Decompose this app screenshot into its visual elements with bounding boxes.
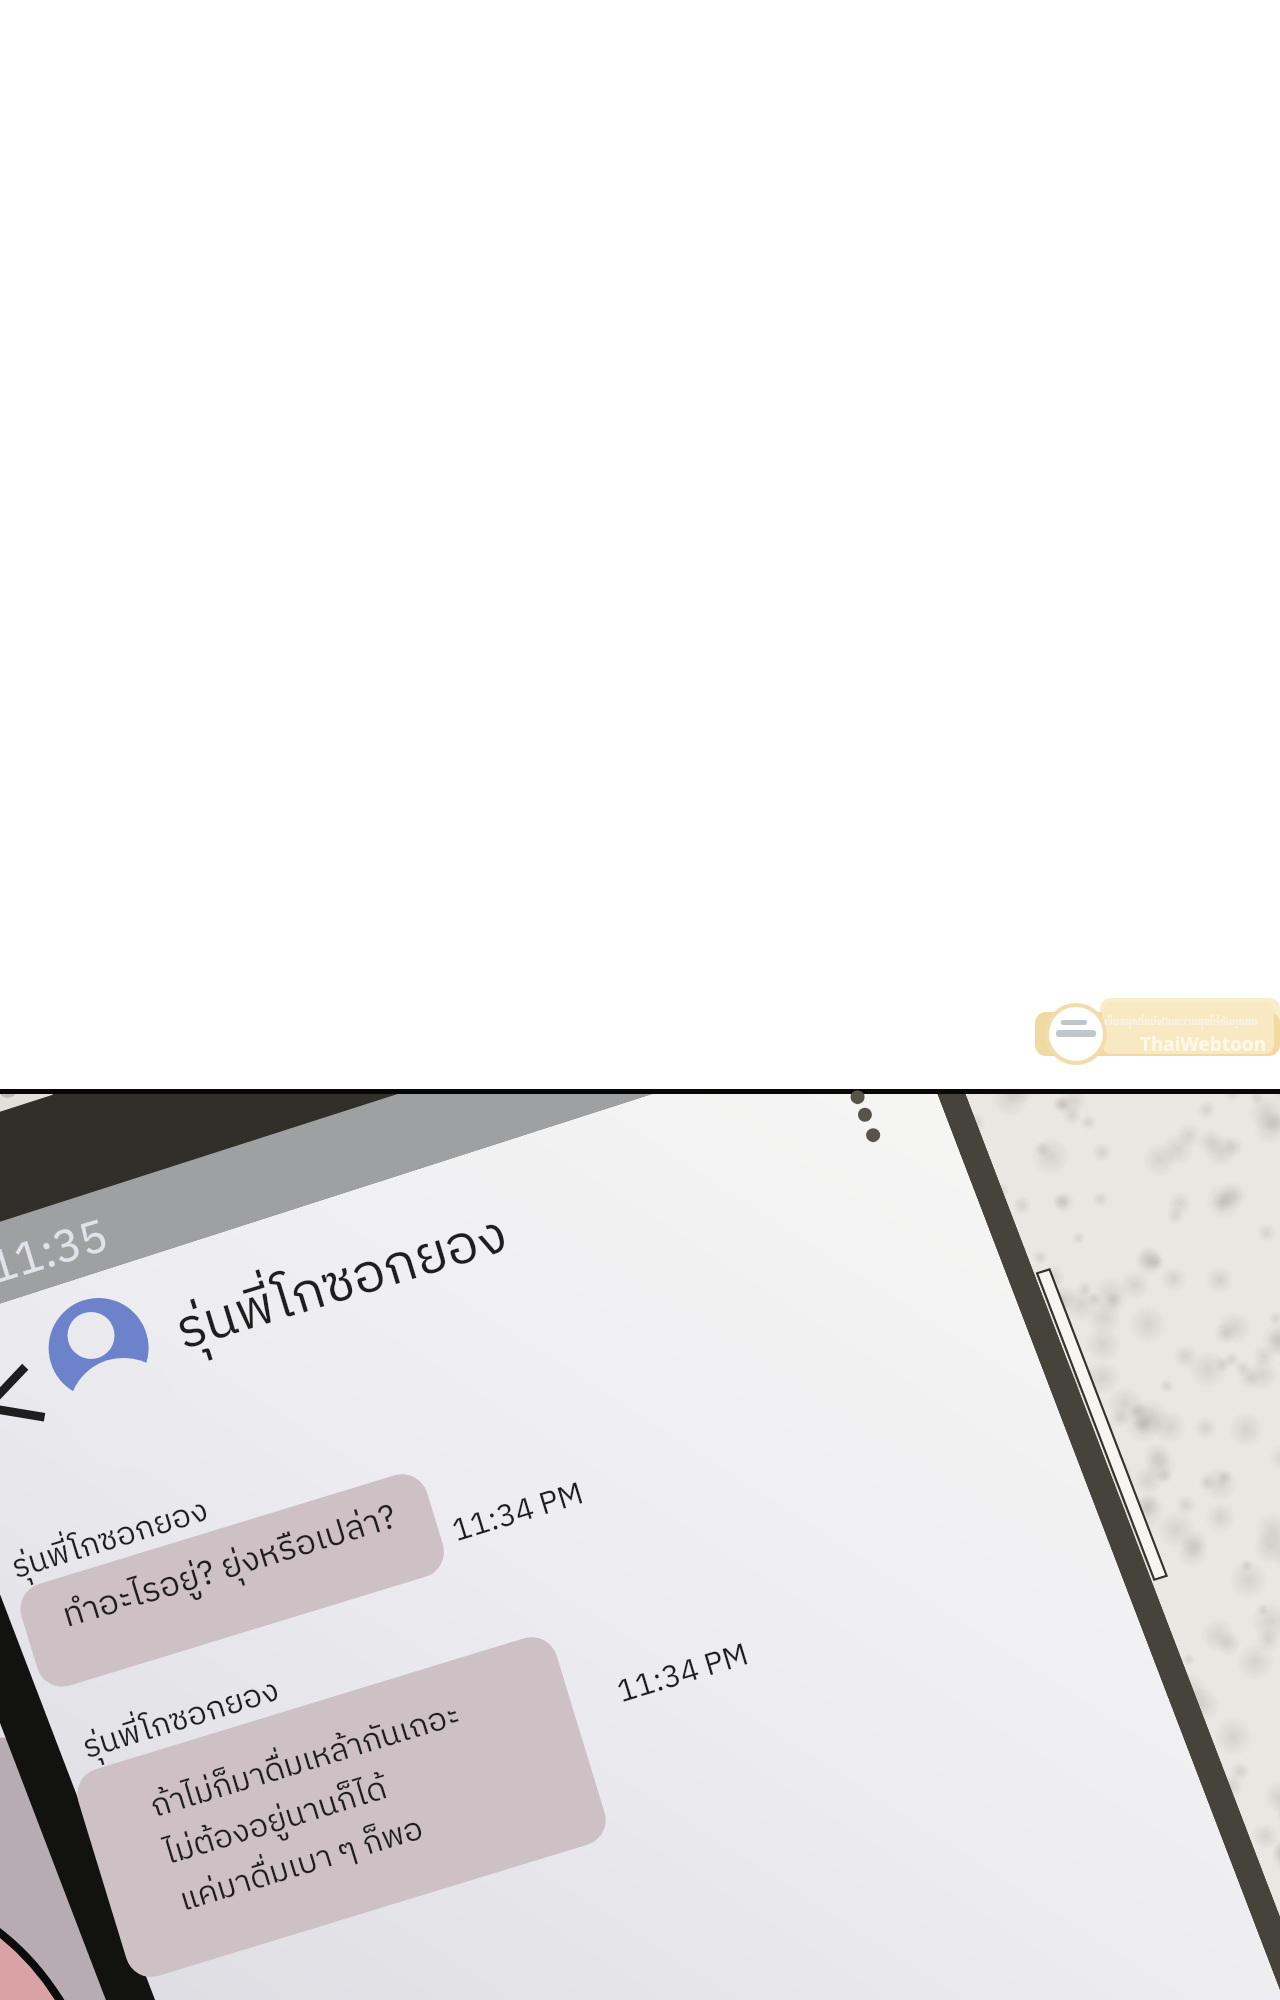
staticText: รุ่นพี่โกซอกยอง — [165, 1192, 519, 1377]
staticText: เว็บสนุกที่แบ่งปันความสุขให้กับทุกคน — [1104, 1014, 1258, 1031]
staticText: ทำอะไรอยู่? ยุ่งหรือเปล่า? — [56, 1489, 404, 1644]
button[interactable] — [80, 1649, 610, 1989]
button[interactable]: More options — [820, 1089, 904, 1191]
staticText: ThaiWebtoon — [1140, 1031, 1267, 1057]
button[interactable]: Back — [0, 1334, 66, 1430]
staticText: 11:34 PM — [611, 1629, 755, 1718]
button[interactable] — [40, 1199, 600, 1439]
button[interactable] — [20, 1459, 450, 1689]
staticText: 11:35 — [0, 1200, 118, 1307]
staticText: 11:34 PM — [446, 1468, 590, 1557]
staticText: รุ่นพี่โกซอกยอง — [76, 1664, 287, 1775]
staticText: ถ้าไม่ก็มาดื่มเหล้ากันเถอะ ไม่ต้องอยู่นา… — [144, 1689, 496, 1927]
staticText: รุ่นพี่โกซอกยอง — [5, 1484, 216, 1595]
